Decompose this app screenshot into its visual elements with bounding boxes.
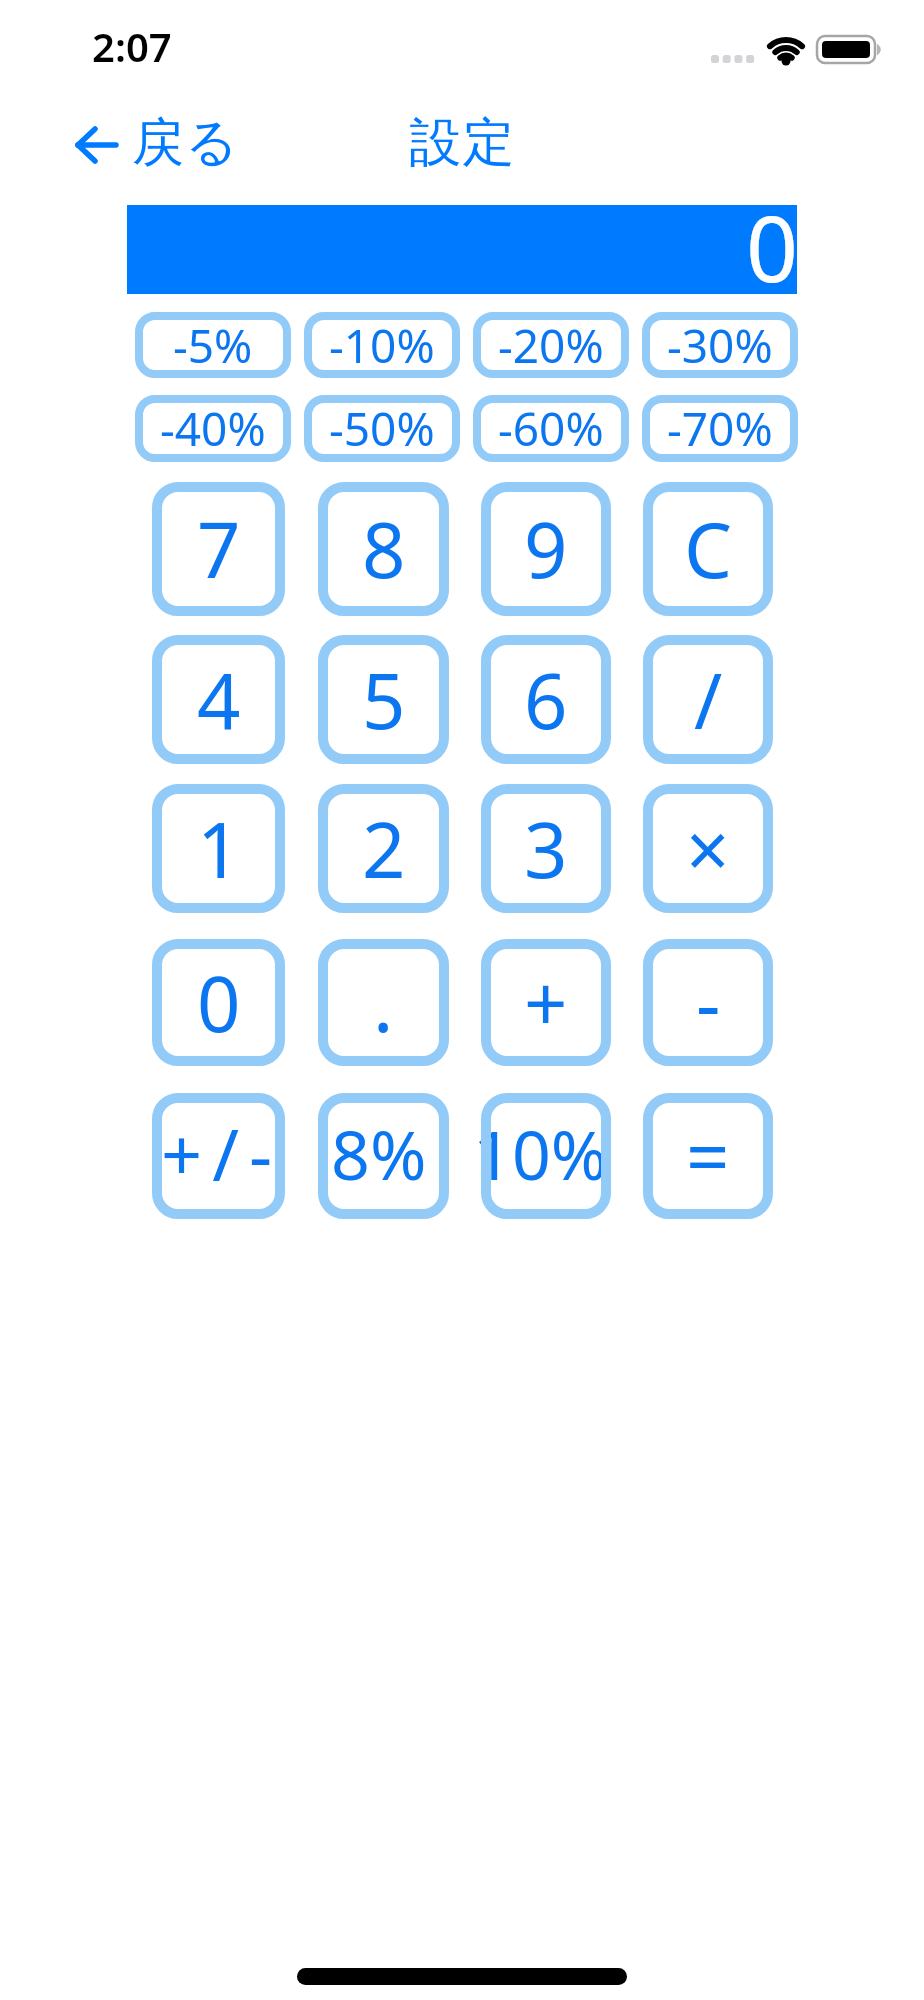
button[interactable]: -70%: [642, 395, 798, 462]
button[interactable]: 10%: [481, 1093, 611, 1219]
button[interactable]: -40%: [135, 395, 291, 462]
button[interactable]: -10%: [304, 312, 460, 378]
staticText: +/-: [161, 1104, 283, 1202]
staticText: 2:07: [92, 19, 172, 73]
staticText: +: [524, 951, 568, 1055]
button[interactable]: 9: [481, 482, 611, 616]
staticText: C: [684, 497, 733, 601]
staticText: -70%: [667, 397, 773, 460]
staticText: -30%: [667, 314, 773, 377]
button[interactable]: -: [643, 939, 773, 1066]
staticText: 4: [197, 648, 241, 752]
staticText: -10%: [329, 314, 435, 377]
staticText: 6: [524, 648, 568, 752]
staticText: 5: [362, 648, 406, 752]
button[interactable]: 4: [152, 635, 285, 764]
button[interactable]: +: [481, 939, 611, 1066]
staticText: 3: [524, 797, 568, 901]
staticText: -40%: [160, 397, 266, 460]
staticText: 8%: [331, 1107, 427, 1200]
button[interactable]: 8%: [318, 1093, 449, 1219]
button[interactable]: C: [643, 482, 773, 616]
button[interactable]: 7: [152, 482, 285, 616]
staticText: 戻る: [132, 110, 240, 176]
button[interactable]: -20%: [473, 312, 629, 378]
staticText: -20%: [498, 314, 604, 377]
button[interactable]: 3: [481, 784, 611, 913]
staticText: 設定: [409, 110, 515, 170]
button[interactable]: ×: [643, 784, 773, 913]
button[interactable]: /: [643, 635, 773, 764]
staticText: 2: [362, 797, 406, 901]
button[interactable]: [127, 205, 797, 294]
staticText: .: [373, 951, 394, 1055]
staticText: 10%: [473, 1107, 603, 1200]
button[interactable]: +/-: [152, 1093, 285, 1219]
button[interactable]: -5%: [135, 312, 291, 378]
button[interactable]: 0: [152, 939, 285, 1066]
staticText: /: [694, 648, 723, 752]
button[interactable]: 5: [318, 635, 449, 764]
button[interactable]: -50%: [304, 395, 460, 462]
button[interactable]: .: [318, 939, 449, 1066]
button[interactable]: 戻る: [76, 110, 240, 176]
button[interactable]: 2: [318, 784, 449, 913]
staticText: 1: [197, 797, 241, 901]
staticText: -5%: [173, 314, 253, 377]
button[interactable]: 1: [152, 784, 285, 913]
button[interactable]: -60%: [473, 395, 629, 462]
button[interactable]: 6: [481, 635, 611, 764]
button[interactable]: 8: [318, 482, 449, 616]
staticText: -60%: [498, 397, 604, 460]
button[interactable]: =: [643, 1093, 773, 1219]
staticText: 0: [197, 951, 241, 1055]
staticText: =: [686, 1104, 730, 1208]
staticText: -: [696, 951, 721, 1055]
staticText: 0: [746, 185, 799, 309]
staticText: 7: [197, 497, 241, 601]
button[interactable]: -30%: [642, 312, 798, 378]
staticText: 8: [362, 497, 406, 601]
staticText: -50%: [329, 397, 435, 460]
staticText: ×: [686, 797, 730, 901]
staticText: 9: [524, 497, 568, 601]
